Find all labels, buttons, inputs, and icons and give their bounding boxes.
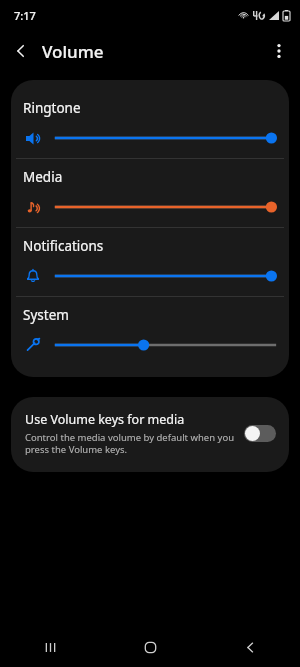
staticText: Ringtone [23,99,81,117]
button[interactable]: Back [0,30,42,72]
button[interactable]: Back [200,627,300,667]
button[interactable]: System [11,297,289,365]
staticText: Volume [42,40,104,63]
button[interactable]: More options [258,30,300,72]
staticText: Notifications [23,237,104,255]
button[interactable]: Use Volume keys for media toggle [244,425,276,442]
button[interactable]: Notifications [11,228,289,296]
button[interactable]: Media [11,159,289,227]
staticText: 7:17 [14,8,36,23]
button[interactable]: Use Volume keys for media [11,397,289,472]
button[interactable]: Recent apps [0,627,100,667]
button[interactable]: Ringtone [11,90,289,158]
staticText: System [23,306,69,324]
button[interactable]: Home [100,627,200,667]
staticText: Media [23,168,63,186]
staticText: Control the media volume by default when… [25,431,236,456]
staticText: Use Volume keys for media [25,411,185,428]
